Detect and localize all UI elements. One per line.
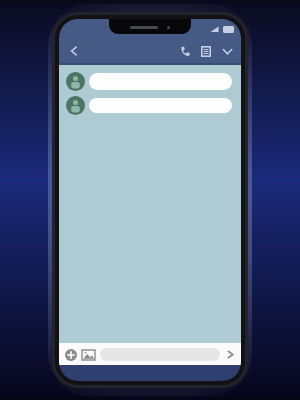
button[interactable]: Back xyxy=(65,42,83,60)
button[interactable] xyxy=(66,72,232,91)
button[interactable]: Expand xyxy=(218,42,236,60)
button[interactable] xyxy=(66,96,232,115)
button[interactable]: Send xyxy=(223,347,237,361)
button[interactable]: Call xyxy=(176,42,194,60)
button[interactable]: Add attachment xyxy=(63,347,78,362)
button[interactable]: Menu xyxy=(197,42,215,60)
button[interactable]: Gallery xyxy=(81,347,96,362)
